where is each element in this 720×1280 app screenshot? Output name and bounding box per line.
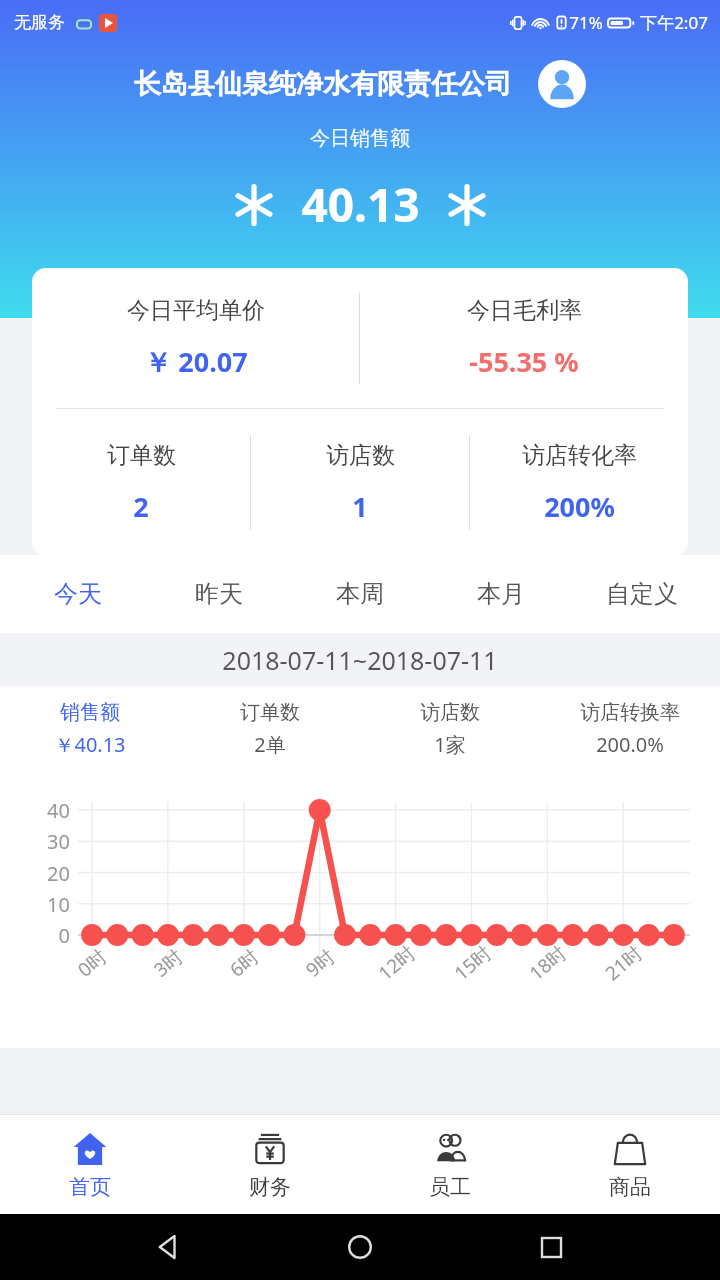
staticText: 15时 [448, 940, 496, 986]
staticText: 2018-07-11~2018-07-11 [222, 643, 498, 677]
button[interactable]: 订单数 [180, 700, 360, 758]
staticText: 商品 [609, 1174, 651, 1200]
staticText: 长岛县仙泉纯净水有限责任公司 [134, 67, 512, 101]
staticText: 6时 [224, 943, 264, 983]
staticText: 1 [352, 488, 368, 525]
staticText: 订单数 [240, 700, 300, 725]
staticText: 40.13 [301, 173, 420, 236]
button[interactable]: 昨天 [148, 555, 289, 633]
staticText: 9时 [300, 943, 340, 983]
staticText: 今天 [54, 579, 102, 609]
button[interactable]: 员工 [360, 1115, 540, 1214]
button[interactable]: Recents [529, 1225, 573, 1269]
staticText: 访店转化率 [522, 441, 637, 470]
staticText: 本周 [336, 579, 384, 609]
staticText: 30 [28, 828, 70, 855]
staticText: 3时 [148, 943, 188, 983]
button[interactable]: 本周 [289, 555, 430, 633]
button[interactable]: Home [338, 1225, 382, 1269]
button[interactable]: 自定义 [571, 555, 712, 633]
button[interactable]: 订单数 [32, 409, 250, 556]
button[interactable]: 今天 [8, 555, 148, 633]
button[interactable]: 访店转换率 [540, 700, 720, 758]
staticText: 20 [28, 860, 70, 887]
staticText: 71% [569, 11, 603, 34]
staticText: 0 [28, 922, 70, 949]
staticText: 无服务 [14, 12, 65, 33]
button[interactable]: 今日平均单价 [32, 268, 359, 408]
button[interactable]: Back [147, 1225, 191, 1269]
button[interactable]: Profile [538, 60, 586, 108]
staticText: ￥ 20.07 [144, 343, 248, 380]
button[interactable]: 今日毛利率 [360, 268, 688, 408]
button[interactable]: 首页 [0, 1115, 180, 1214]
staticText: 18时 [523, 940, 571, 986]
staticText: 员工 [429, 1174, 471, 1200]
staticText: 订单数 [107, 441, 176, 470]
staticText: 21时 [599, 940, 647, 986]
staticText: 0时 [72, 943, 112, 983]
staticText: 1家 [434, 731, 466, 758]
button[interactable]: 销售额 [0, 700, 180, 758]
button[interactable]: 本月 [430, 555, 571, 633]
staticText: 200% [544, 488, 615, 525]
staticText: 访店转换率 [580, 700, 680, 725]
staticText: 200.0% [596, 731, 664, 758]
staticText: 本月 [477, 579, 525, 609]
button[interactable]: 访店转化率 [470, 409, 688, 556]
staticText: 访店数 [420, 700, 480, 725]
staticText: 自定义 [606, 579, 678, 609]
staticText: 2 [133, 488, 149, 525]
staticText: ￥40.13 [54, 731, 126, 758]
staticText: 10 [28, 891, 70, 918]
staticText: 销售额 [60, 700, 120, 725]
staticText: 昨天 [195, 579, 243, 609]
staticText: -55.35 % [469, 343, 579, 380]
staticText: 今日毛利率 [467, 296, 582, 325]
staticText: 今日销售额 [310, 126, 410, 151]
staticText: 下午2:07 [640, 11, 708, 34]
staticText: 40 [28, 797, 70, 824]
staticText: 首页 [69, 1174, 111, 1200]
button[interactable]: 商品 [540, 1115, 720, 1214]
staticText: 2单 [254, 731, 286, 758]
button[interactable]: 财务 [180, 1115, 360, 1214]
button[interactable]: 访店数 [360, 700, 540, 758]
staticText: 财务 [249, 1174, 291, 1200]
staticText: 今日平均单价 [127, 296, 265, 325]
staticText: 12时 [372, 940, 420, 986]
staticText: 访店数 [326, 441, 395, 470]
button[interactable]: 访店数 [251, 409, 469, 556]
